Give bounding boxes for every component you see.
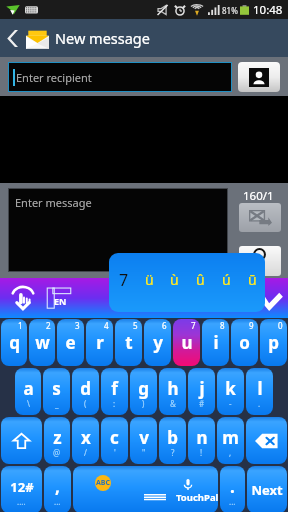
staticText: h xyxy=(167,377,179,400)
staticText: j xyxy=(199,377,205,400)
staticText: o xyxy=(239,331,250,354)
button[interactable]: & xyxy=(159,368,186,415)
staticText: ' xyxy=(114,447,116,458)
staticText: " xyxy=(142,447,146,458)
staticText: q xyxy=(9,331,20,354)
staticText: i xyxy=(213,331,219,354)
button[interactable]: space xyxy=(73,466,218,512)
button[interactable]: ' xyxy=(101,417,128,464)
staticText: ( xyxy=(84,398,87,409)
button[interactable]: ! xyxy=(188,417,215,464)
staticText: # xyxy=(199,398,205,409)
staticText: f xyxy=(111,377,118,400)
staticText: x xyxy=(81,426,91,449)
button[interactable]: 3 xyxy=(57,319,84,366)
button[interactable]: 1 xyxy=(1,319,27,366)
button[interactable]: ... xyxy=(220,466,245,512)
button[interactable]: 6 xyxy=(144,319,171,366)
button[interactable]: Language xyxy=(45,283,73,311)
staticText: ! xyxy=(200,447,203,458)
button[interactable]: : xyxy=(101,368,128,415)
staticText: v xyxy=(139,426,149,449)
staticText: ? xyxy=(171,447,175,458)
staticText: k xyxy=(225,377,236,400)
staticText: r xyxy=(96,331,104,354)
button[interactable]: Gesture input xyxy=(9,283,37,311)
staticText: 7 xyxy=(191,320,196,331)
button[interactable]: ... xyxy=(44,466,71,512)
button[interactable]: _ xyxy=(43,368,70,415)
button[interactable]: Confirm xyxy=(256,290,284,318)
staticText: / xyxy=(84,447,87,458)
staticText: 5 xyxy=(133,320,138,331)
button[interactable]: . xyxy=(246,368,273,415)
button[interactable]: Enter message xyxy=(9,189,227,271)
staticText: 10:48 xyxy=(253,2,283,18)
button[interactable]: back xyxy=(246,417,287,464)
staticText: ū xyxy=(248,270,257,289)
button[interactable]: 0 xyxy=(260,319,287,366)
button[interactable]: @ xyxy=(44,417,70,464)
button[interactable]: # xyxy=(188,368,215,415)
staticText: 81% xyxy=(222,5,238,16)
button[interactable]: 8 xyxy=(202,319,229,366)
staticText: 8 xyxy=(220,320,225,331)
button[interactable]: Attach xyxy=(239,246,281,276)
button[interactable]: / xyxy=(72,417,99,464)
staticText: , xyxy=(229,447,232,458)
staticText: , xyxy=(55,475,60,498)
button[interactable]: ( xyxy=(72,368,99,415)
staticText: 0 xyxy=(278,320,283,331)
staticText: \ xyxy=(27,398,30,409)
button[interactable]: 7 xyxy=(173,319,200,366)
staticText: EN xyxy=(54,295,67,307)
staticText: n xyxy=(196,426,208,449)
staticText: ... xyxy=(229,496,236,507)
staticText: & xyxy=(170,398,176,409)
staticText: ... xyxy=(54,496,61,507)
staticText: c xyxy=(110,426,119,449)
button[interactable]: ) xyxy=(130,368,157,415)
button[interactable]: Next xyxy=(247,466,287,512)
button[interactable]: \ xyxy=(15,368,41,415)
staticText: e xyxy=(65,331,76,354)
staticText: d xyxy=(80,377,91,400)
staticText: .... xyxy=(17,496,26,507)
staticText: g xyxy=(138,377,149,400)
staticText: 4 xyxy=(104,320,109,331)
button[interactable]: Back xyxy=(0,19,24,57)
staticText: ü xyxy=(145,270,154,289)
button[interactable]: .... xyxy=(1,466,42,512)
staticText: y xyxy=(153,331,163,354)
staticText: p xyxy=(268,331,279,354)
staticText: ABC xyxy=(96,478,110,488)
button[interactable]: 4 xyxy=(86,319,113,366)
staticText: 160/1 xyxy=(243,188,274,204)
button[interactable]: 2 xyxy=(29,319,55,366)
staticText: 9 xyxy=(249,320,254,331)
button[interactable]: 7 xyxy=(109,253,265,312)
button[interactable]: Choose contact xyxy=(238,62,280,92)
staticText: s xyxy=(52,377,61,400)
button[interactable]: Enter recipient xyxy=(9,63,231,91)
staticText: ) xyxy=(142,398,145,409)
staticText: 1 xyxy=(18,320,23,331)
staticText: ù xyxy=(170,270,179,289)
button[interactable]: , xyxy=(217,417,244,464)
staticText: 6 xyxy=(162,320,167,331)
button[interactable]: " xyxy=(130,417,157,464)
staticText: . xyxy=(258,398,261,409)
button[interactable]: 9 xyxy=(231,319,258,366)
button[interactable]: ? xyxy=(159,417,186,464)
button[interactable]: - xyxy=(217,368,244,415)
staticText: u xyxy=(181,331,193,354)
staticText: @ xyxy=(53,447,61,458)
staticText: New message xyxy=(55,28,150,48)
staticText: 12# xyxy=(10,478,34,496)
button[interactable]: shift xyxy=(1,417,42,464)
staticText: l xyxy=(257,377,263,400)
staticText: 2 xyxy=(46,320,51,331)
staticText: Enter message xyxy=(15,195,92,210)
button[interactable]: Send xyxy=(239,203,281,232)
button[interactable]: 5 xyxy=(115,319,142,366)
